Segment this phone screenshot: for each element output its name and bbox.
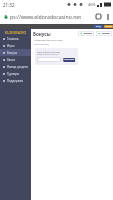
- staticText: Регистр: [105, 25, 113, 28]
- button[interactable]: [37, 57, 61, 62]
- staticText: Касса: [7, 58, 15, 62]
- staticText: 21:32: [3, 2, 15, 8]
- staticText: Вход: [96, 25, 101, 28]
- staticText: Активация бонусного кода: [34, 39, 63, 42]
- button[interactable]: Турниры: [0, 70, 31, 77]
- button[interactable]: Бонусы: [0, 49, 31, 56]
- staticText: Вывод средств: [7, 65, 28, 69]
- button[interactable]: Вход: [94, 25, 103, 28]
- button[interactable]: Касса: [0, 56, 31, 63]
- staticText: Игры: [7, 44, 15, 48]
- button[interactable]: Активировать: [63, 58, 75, 62]
- button[interactable]: Поддержка: [0, 77, 31, 84]
- button[interactable]: Профиль: [96, 31, 112, 36]
- button[interactable]: Регистр: [104, 25, 113, 28]
- staticText: Введите бонусный код: [37, 53, 58, 56]
- staticText: ps://www.eldoradocasino.net: [10, 13, 82, 20]
- button[interactable]: Вывод средств: [0, 63, 31, 70]
- staticText: Бонусы: [7, 51, 18, 55]
- staticText: Турниры: [7, 72, 20, 76]
- staticText: Бонусы: [33, 31, 51, 37]
- button[interactable]: Игры: [0, 42, 31, 49]
- button[interactable]: Баланс: [78, 31, 94, 36]
- staticText: ELDORADO: [5, 30, 27, 35]
- staticText: Ваш бонусный код: [37, 50, 60, 53]
- staticText: 46%: [88, 2, 96, 7]
- button[interactable]: More options: [103, 12, 112, 21]
- button[interactable]: Tabs: [94, 12, 103, 21]
- button[interactable]: Главная: [0, 35, 31, 42]
- staticText: Активировать: [63, 58, 75, 62]
- staticText: Бонусный код: [34, 43, 49, 46]
- staticText: Главная: [7, 37, 19, 41]
- staticText: Поддержка: [7, 79, 23, 83]
